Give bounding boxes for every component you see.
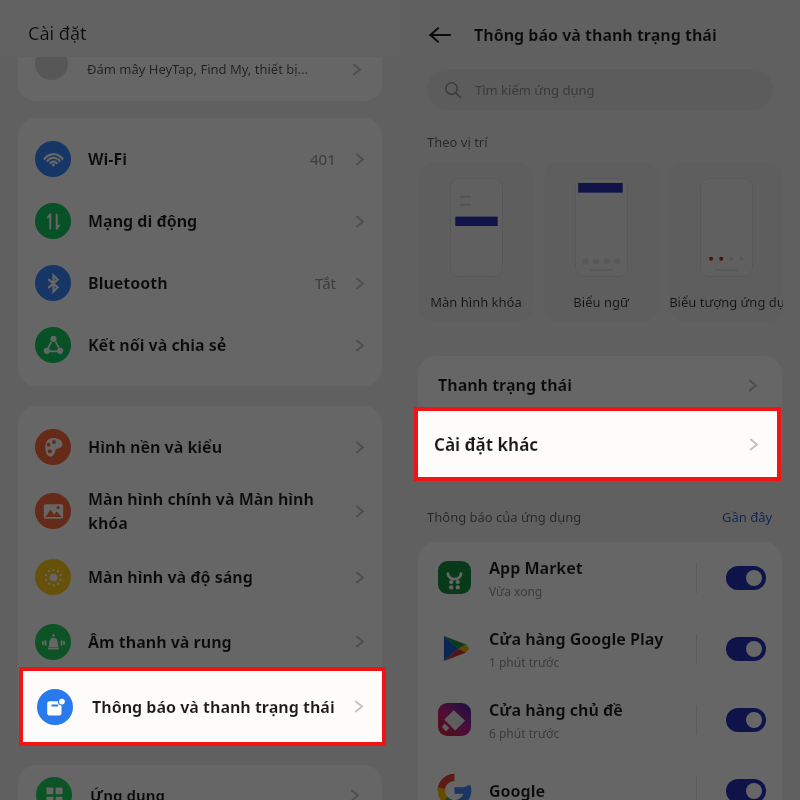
staticText: Hình nền và kiểu — [88, 436, 350, 458]
staticText: Ứng dụng — [90, 785, 345, 800]
staticText: 6 phút trước — [489, 725, 560, 741]
button[interactable]: Biểu tượng ứng dụng — [669, 162, 783, 322]
staticText: 401 — [310, 149, 336, 169]
staticText: Âm thanh và rung — [88, 631, 350, 653]
button[interactable]: Kết nối và chia sẻ — [18, 314, 382, 376]
button[interactable]: Gần đây — [722, 508, 773, 526]
staticText: Đám mây HeyTap, Find My, thiết bị... — [87, 60, 347, 78]
staticText: Theo vị trí — [427, 133, 488, 151]
staticText: Vừa xong — [489, 583, 543, 599]
staticText: Thông báo của ứng dụng — [427, 508, 722, 526]
button[interactable]: App Market — [418, 542, 782, 613]
staticText: Bluetooth — [88, 272, 315, 294]
staticText: Tắt — [315, 273, 336, 293]
button[interactable]: Màn hình chính và Màn hình khóa — [18, 478, 382, 544]
button[interactable]: Thông báo và thanh trạng thái — [23, 671, 382, 742]
staticText: Cài đặt khác — [434, 433, 744, 456]
button[interactable]: Cài đặt khác — [418, 407, 782, 471]
button[interactable]: Toggle Cửa hàng chủ đề — [726, 708, 766, 732]
staticText: App Market — [489, 557, 583, 579]
button[interactable]: Cửa hàng Google Play — [418, 613, 782, 684]
button[interactable]: Cài đặt khác — [418, 411, 777, 477]
staticText: Tìm kiếm ứng dụng — [475, 81, 595, 99]
button[interactable]: Back — [423, 18, 457, 52]
button[interactable]: Tìm kiếm ứng dụng — [427, 69, 773, 110]
button[interactable]: Toggle App Market — [726, 566, 766, 590]
button[interactable]: Màn hình khóa — [419, 162, 533, 322]
button[interactable]: Biểu ngữ — [544, 162, 658, 322]
staticText: Thông báo và thanh trạng thái — [88, 693, 350, 715]
staticText: Google — [489, 780, 546, 800]
staticText: Thông báo và thanh trạng thái — [474, 24, 717, 46]
button[interactable]: Màn hình và độ sáng — [18, 544, 382, 610]
button[interactable]: Bluetooth — [18, 252, 382, 314]
staticText: Màn hình chính và Màn hình khóa — [88, 488, 350, 534]
button[interactable]: Hình nền và kiểu — [18, 416, 382, 478]
staticText: Kết nối và chia sẻ — [88, 334, 350, 356]
staticText: Cài đặt — [28, 21, 87, 46]
staticText: Cài đặt khác — [438, 428, 743, 450]
button[interactable]: Thông báo và thanh trạng thái — [18, 673, 382, 735]
staticText: Thanh trạng thái — [438, 374, 743, 396]
button[interactable]: Toggle Cửa hàng Google Play — [726, 637, 766, 661]
staticText: Cửa hàng Google Play — [489, 628, 664, 650]
staticText: Wi-Fi — [88, 148, 310, 170]
button[interactable]: Wi-Fi — [18, 128, 382, 190]
button[interactable]: Âm thanh và rung — [18, 610, 382, 673]
button[interactable]: Mạng di động — [18, 190, 382, 252]
staticText: Màn hình và độ sáng — [88, 566, 350, 588]
staticText: Cửa hàng chủ đề — [489, 699, 623, 721]
staticText: Biểu tượng ứng dụng — [669, 293, 783, 311]
staticText: Thông báo và thanh trạng thái — [92, 696, 349, 718]
staticText: Mạng di động — [88, 210, 350, 232]
staticText: Biểu ngữ — [573, 293, 629, 311]
staticText: 1 phút trước — [489, 654, 560, 670]
button[interactable]: Thanh trạng thái — [418, 363, 782, 407]
button[interactable]: Cửa hàng chủ đề — [418, 684, 782, 755]
button[interactable]: Google — [418, 755, 782, 800]
staticText: Màn hình khóa — [430, 293, 522, 311]
button[interactable]: Toggle Google — [726, 779, 766, 800]
